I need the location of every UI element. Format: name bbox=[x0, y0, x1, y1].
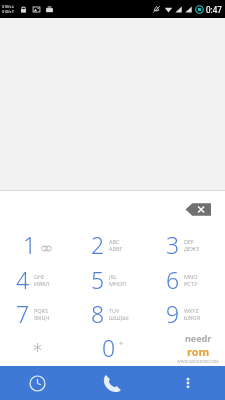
button[interactable]: Call bbox=[75, 366, 150, 400]
staticText: GHI bbox=[34, 273, 44, 280]
button[interactable]: 6 bbox=[150, 262, 225, 296]
staticText: 0:47 bbox=[206, 4, 222, 15]
staticText: ИЙКЛ bbox=[34, 280, 50, 287]
button[interactable]: 2 bbox=[75, 227, 150, 262]
staticText: 4 bbox=[16, 264, 30, 295]
button[interactable]: Recent calls bbox=[0, 366, 75, 400]
staticText: ФХЦЧ bbox=[34, 314, 50, 321]
staticText: ABC bbox=[109, 238, 120, 245]
staticText: + bbox=[119, 339, 124, 349]
staticText: 2 bbox=[91, 229, 105, 260]
staticText: 5 bbox=[91, 264, 105, 295]
staticText: 0 B/s↓ bbox=[2, 4, 15, 9]
staticText: 7 bbox=[16, 298, 30, 329]
button[interactable]: More options bbox=[150, 366, 225, 400]
staticText: PQRS bbox=[34, 307, 49, 314]
staticText: ЬЭЮЯ bbox=[184, 314, 200, 321]
staticText: 6 bbox=[166, 264, 180, 295]
staticText: 1 bbox=[23, 229, 37, 260]
staticText: needr bbox=[185, 332, 212, 344]
staticText: АБВГ bbox=[109, 245, 123, 252]
button[interactable]: 1 bbox=[0, 227, 75, 262]
staticText: ШЩЪЫ bbox=[109, 314, 129, 321]
staticText: ДЕЖЗ bbox=[184, 245, 200, 252]
staticText: 9 bbox=[166, 298, 180, 329]
staticText: 8 bbox=[91, 298, 105, 329]
staticText: DEF bbox=[184, 238, 194, 245]
button[interactable] bbox=[0, 330, 75, 364]
staticText: МНОП bbox=[109, 280, 127, 287]
button[interactable]: 9 bbox=[150, 296, 225, 330]
button[interactable]: 7 bbox=[0, 296, 75, 330]
staticText: JKL bbox=[109, 273, 117, 280]
staticText: 0 B/s↑ bbox=[2, 9, 15, 14]
button[interactable]: Delete bbox=[185, 202, 211, 217]
staticText: WWW.NEEDROM.COM bbox=[177, 359, 219, 364]
staticText: 3 bbox=[166, 229, 180, 260]
button[interactable]: 4 bbox=[0, 262, 75, 296]
staticText: РСТУ bbox=[184, 280, 198, 287]
staticText: TUV bbox=[109, 307, 120, 314]
button[interactable]: 0 bbox=[75, 330, 150, 364]
button[interactable]: 5 bbox=[75, 262, 150, 296]
staticText: rom bbox=[187, 344, 210, 359]
staticText: MNO bbox=[184, 273, 198, 280]
button[interactable]: 8 bbox=[75, 296, 150, 330]
staticText: WXYZ bbox=[184, 307, 199, 314]
button[interactable]: 3 bbox=[150, 227, 225, 262]
staticText: 0 bbox=[102, 332, 116, 363]
